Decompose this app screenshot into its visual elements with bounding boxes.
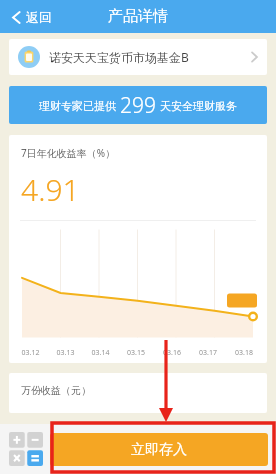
staticText: 万份收益（元） <box>21 384 91 397</box>
staticText: 诺安天天宝货币市场基金B <box>49 49 189 65</box>
staticText: 理财专家已提供 <box>39 99 116 113</box>
staticText: 03.14 <box>83 348 118 358</box>
button[interactable]: 理财专家已提供 <box>9 86 267 124</box>
staticText: 03.18 <box>226 348 262 358</box>
staticText: 299 <box>120 91 156 120</box>
button[interactable]: 计算器 <box>6 429 46 469</box>
staticText: 03.16 <box>154 348 190 358</box>
staticText: 产品详情 <box>108 7 168 26</box>
button[interactable]: 立即存入 <box>50 433 268 466</box>
staticText: 天安全理财服务 <box>160 99 237 113</box>
staticText: 7日年化收益率（%） <box>21 146 116 160</box>
staticText: 立即存入 <box>131 441 187 459</box>
staticText: 03.12 <box>13 348 48 358</box>
staticText: 4.91 <box>21 169 80 210</box>
staticText: 03.17 <box>190 348 226 358</box>
button[interactable]: 诺安天天宝货币市场基金B <box>9 39 267 75</box>
staticText: 03.15 <box>118 348 154 358</box>
staticText: 03.13 <box>48 348 83 358</box>
button[interactable]: 返回 <box>8 5 56 29</box>
staticText: 返回 <box>26 9 52 25</box>
